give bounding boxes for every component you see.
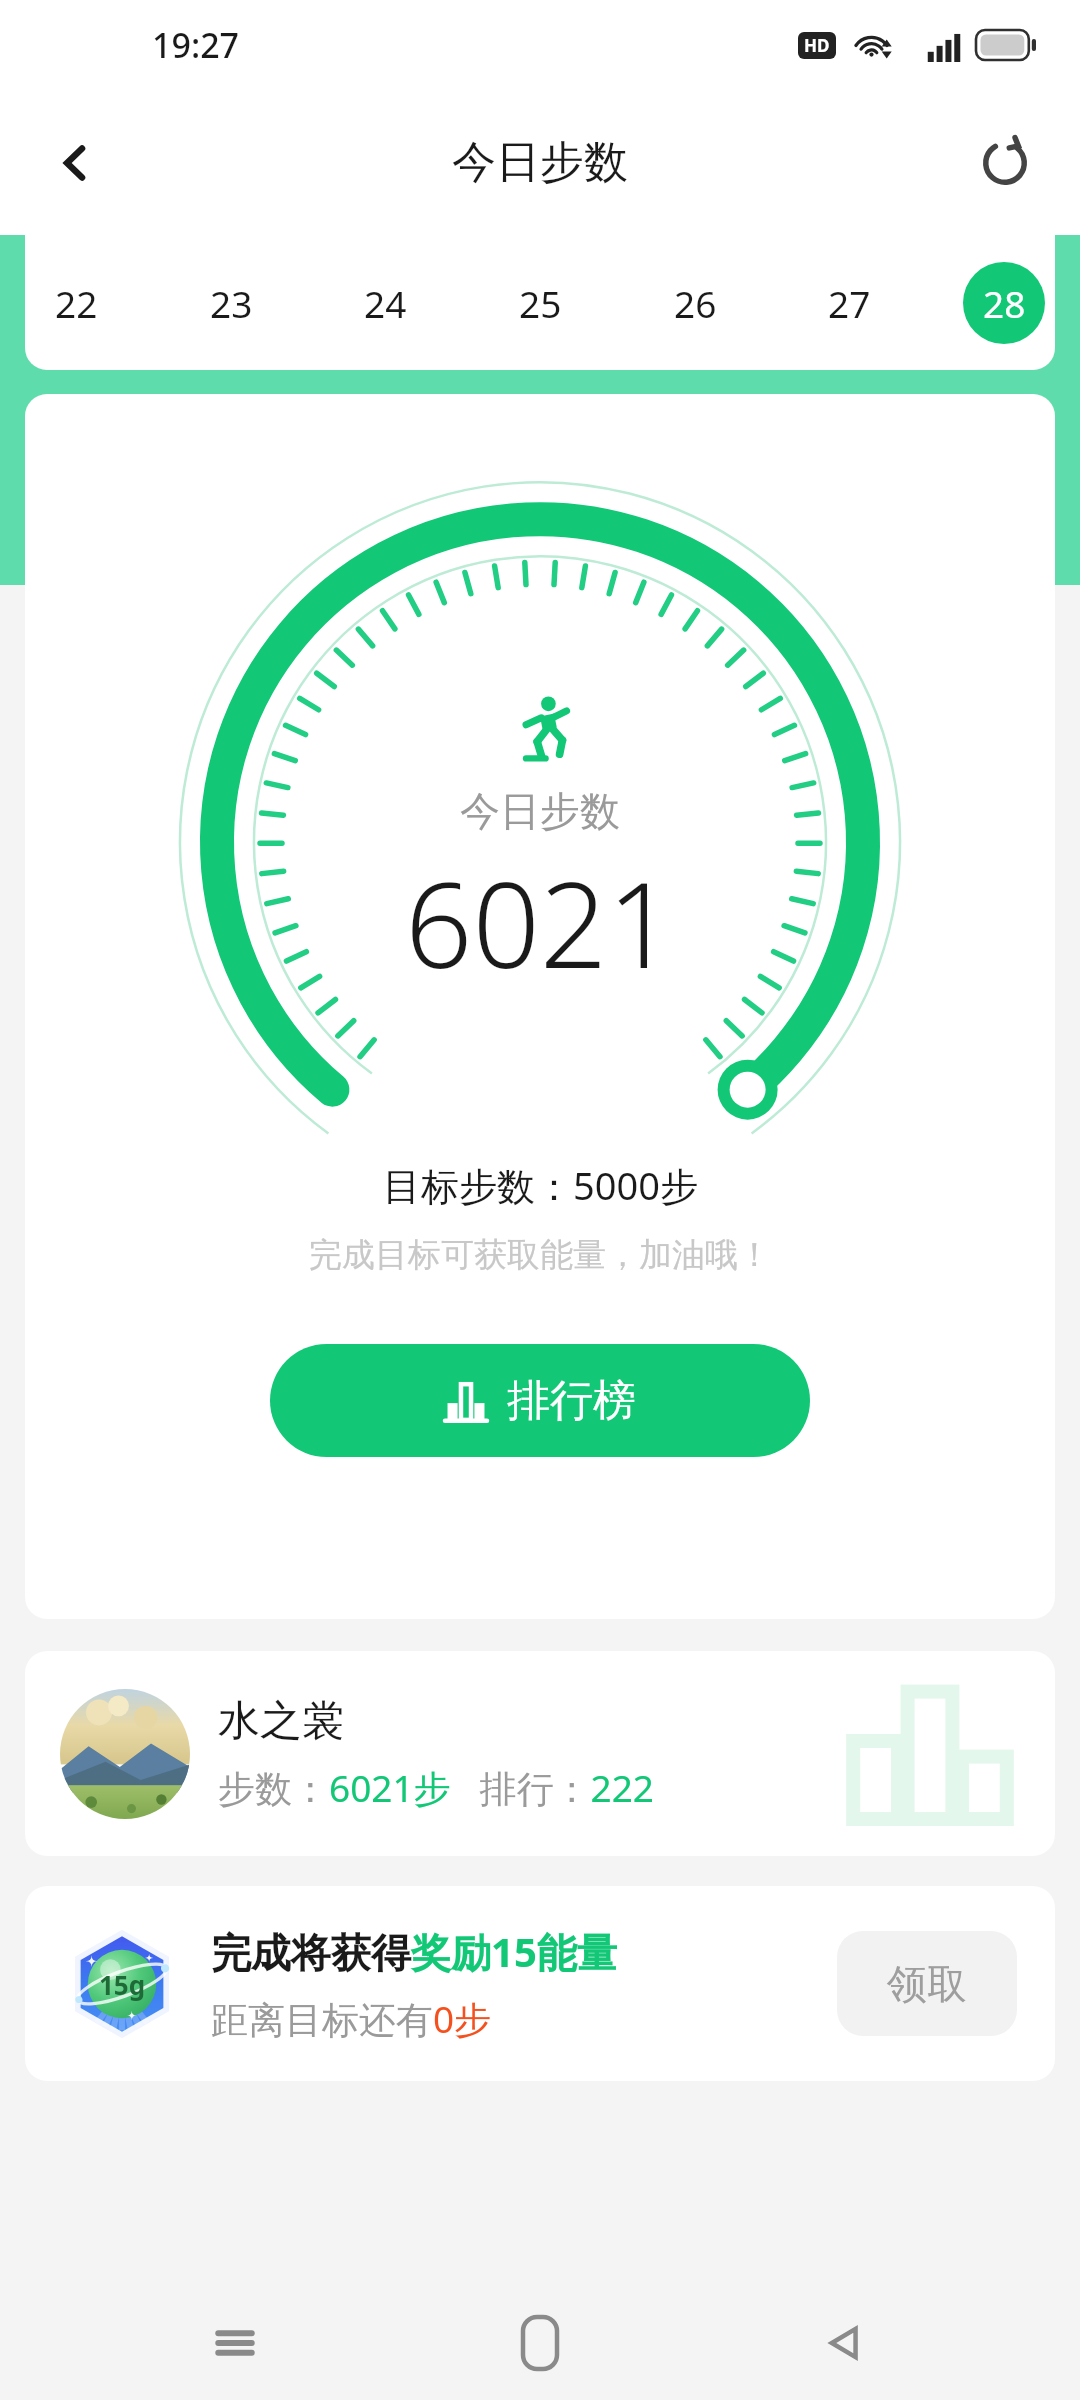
staticText: 今日步数 — [452, 135, 628, 190]
button[interactable]: 23 — [190, 262, 272, 344]
staticText: HD — [804, 34, 830, 57]
staticText: 24 — [364, 278, 407, 328]
staticText: 排行榜 — [507, 1374, 636, 1428]
staticText: 完成将获得奖励15能量 — [211, 1924, 617, 1979]
staticText: 6021 — [405, 842, 675, 1003]
button[interactable]: Home — [470, 2285, 610, 2400]
staticText: 距离目标还有0步 — [211, 1993, 492, 2044]
button[interactable]: 28 — [963, 262, 1045, 344]
button[interactable]: 排行榜 — [270, 1344, 810, 1457]
staticText: 26 — [674, 278, 717, 328]
button[interactable]: 领取 — [837, 1931, 1017, 2036]
button[interactable]: 27 — [808, 262, 890, 344]
staticText: 19:27 — [152, 22, 240, 68]
staticText: 水之裳 — [218, 1695, 344, 1748]
staticText: 完成目标可获取能量，加油哦！ — [309, 1234, 771, 1276]
staticText: 领取 — [887, 1959, 967, 2009]
button[interactable]: 水之裳 — [25, 1651, 1055, 1856]
button[interactable]: Refresh — [960, 118, 1050, 208]
button[interactable]: 24 — [344, 262, 426, 344]
staticText: 25 — [519, 278, 562, 328]
staticText: 22 — [55, 278, 98, 328]
button[interactable]: 25 — [499, 262, 581, 344]
staticText: 15g — [99, 1967, 146, 2002]
staticText: 27 — [828, 278, 871, 328]
button[interactable]: Back — [775, 2285, 915, 2400]
staticText: 今日步数 — [460, 786, 620, 836]
button[interactable]: 26 — [654, 262, 736, 344]
button[interactable]: 22 — [35, 262, 117, 344]
button[interactable]: Recents — [165, 2285, 305, 2400]
staticText: 目标步数：5000步 — [383, 1159, 698, 1211]
staticText: 23 — [210, 278, 253, 328]
staticText: 步数：6021步 排行：222 — [218, 1762, 655, 1813]
staticText: 28 — [983, 278, 1026, 328]
button[interactable]: Back — [30, 118, 120, 208]
